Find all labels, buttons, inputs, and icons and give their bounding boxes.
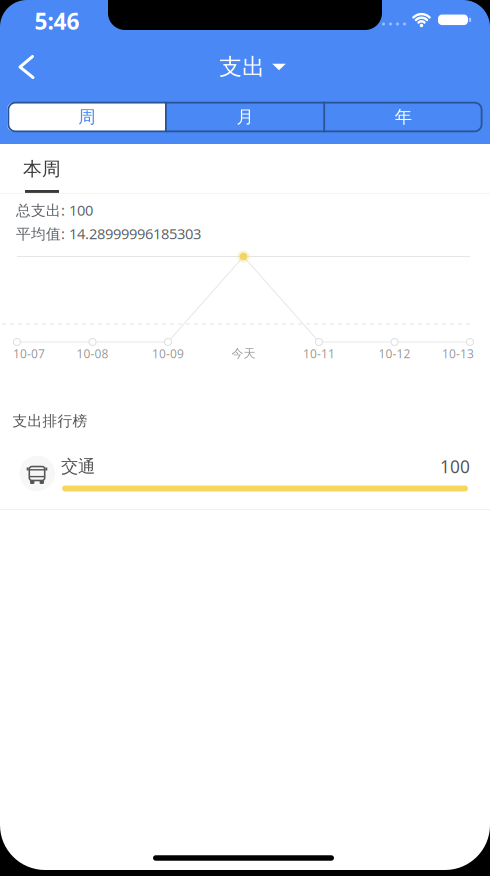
staticText: 总支出: 100 [16, 200, 93, 220]
staticText: 周 [78, 106, 95, 128]
staticText: 年 [395, 106, 412, 128]
button[interactable]: 年 [328, 102, 478, 132]
button[interactable]: 周 [12, 102, 162, 132]
button[interactable]: 本周 [12, 152, 72, 186]
staticText: 5:46 [34, 6, 79, 36]
staticText: 10-08 [76, 345, 108, 361]
staticText: 平均值: 14.28999996185303 [16, 224, 201, 243]
staticText: 100 [440, 455, 470, 478]
button[interactable]: Back [4, 50, 48, 84]
staticText: 本周 [23, 157, 61, 180]
staticText: 10-12 [378, 345, 410, 361]
staticText: 交通 [61, 456, 95, 477]
staticText: 10-09 [152, 345, 184, 361]
staticText: 10-11 [303, 345, 335, 361]
staticText: 支出 [219, 53, 265, 81]
button[interactable]: 交通 [0, 444, 490, 510]
staticText: 支出排行榜 [12, 412, 87, 430]
button[interactable]: 月 [170, 102, 320, 132]
staticText: 10-13 [442, 345, 474, 361]
staticText: 月 [236, 106, 253, 128]
staticText: 10-07 [13, 345, 45, 361]
staticText: 今天 [231, 346, 255, 361]
button[interactable]: 支出 [219, 53, 286, 81]
